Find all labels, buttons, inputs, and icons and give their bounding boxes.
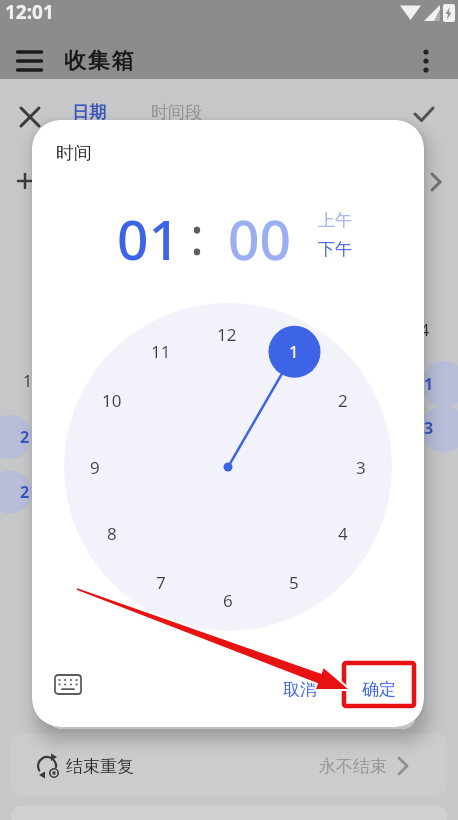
button[interactable]: 日期 — [44, 95, 134, 129]
button[interactable]: 上午 — [300, 206, 370, 234]
button[interactable] — [48, 666, 88, 702]
staticText: 2 — [20, 426, 30, 448]
staticText: 01 — [117, 201, 180, 276]
staticText: 10 — [102, 389, 122, 412]
button[interactable] — [10, 43, 54, 79]
staticText: 上午 — [318, 210, 352, 231]
button[interactable] — [406, 96, 446, 132]
staticText: 2 — [338, 389, 348, 412]
staticText: 1 — [424, 373, 434, 395]
staticText: 确定 — [362, 679, 396, 700]
staticText: 2 — [20, 481, 30, 503]
button[interactable]: 00 — [189, 198, 329, 278]
staticText: 3 — [424, 417, 434, 439]
staticText: 3 — [356, 456, 366, 479]
staticText: 6 — [223, 589, 233, 612]
staticText: 时间 — [56, 142, 92, 165]
staticText: 永不结束 — [319, 756, 387, 777]
button[interactable]: 01 — [78, 198, 218, 278]
button[interactable] — [12, 100, 48, 136]
staticText: 1 — [289, 340, 299, 363]
staticText: 5 — [289, 571, 299, 594]
button[interactable] — [11, 736, 447, 796]
staticText: 12:01 — [5, 0, 54, 25]
staticText: 7 — [156, 571, 166, 594]
staticText: 8 — [107, 522, 117, 545]
staticText: 结束重复 — [66, 756, 134, 777]
button[interactable]: 确定 — [341, 667, 417, 711]
staticText: 4 — [420, 319, 430, 341]
staticText: 下午 — [318, 239, 352, 260]
staticText: 12 — [217, 323, 237, 346]
staticText: 00 — [228, 201, 291, 276]
staticText: 时间段 — [151, 102, 202, 123]
staticText: 9 — [90, 456, 100, 479]
button[interactable]: 取消 — [262, 667, 338, 711]
staticText: 11 — [151, 340, 171, 363]
button[interactable]: 下午 — [300, 235, 370, 263]
staticText: : — [190, 199, 204, 270]
button[interactable]: 时间段 — [126, 95, 226, 129]
staticText: 收集箱 — [64, 47, 136, 75]
staticText: 4 — [338, 522, 348, 545]
staticText: 日期 — [72, 102, 106, 123]
button[interactable] — [406, 43, 446, 79]
staticText: 取消 — [283, 679, 317, 700]
staticText: 1 — [23, 370, 33, 392]
